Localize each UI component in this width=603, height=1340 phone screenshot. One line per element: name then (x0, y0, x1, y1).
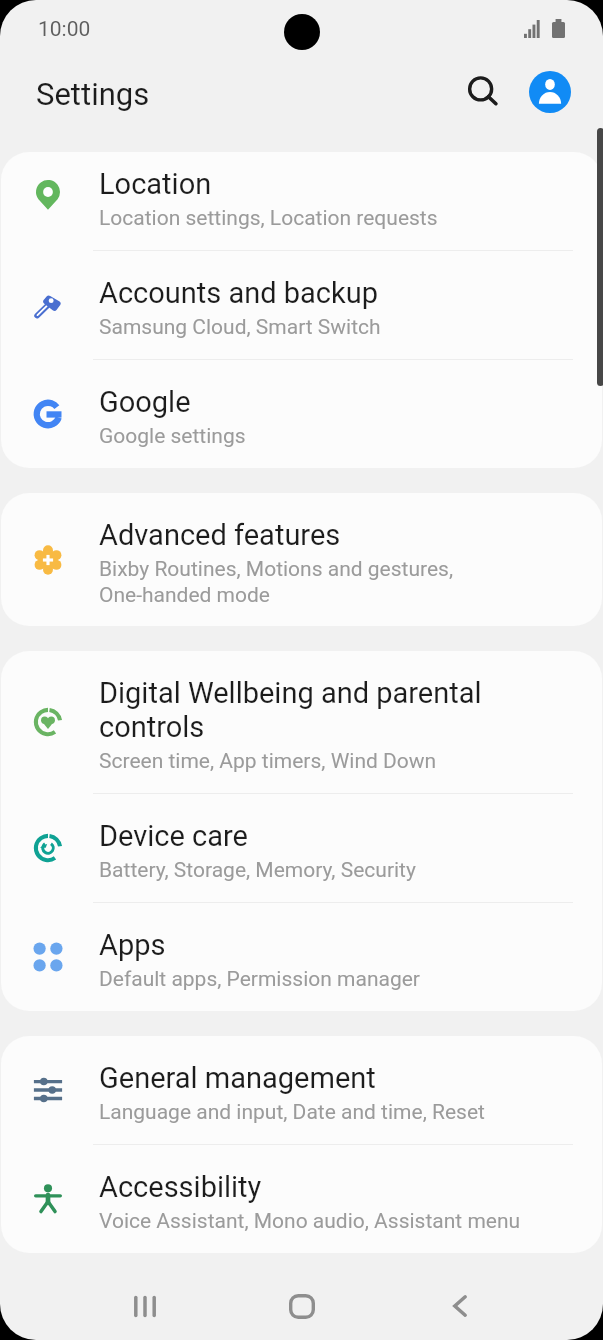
staticText: Voice Assistant, Mono audio, Assistant m… (99, 1209, 521, 1234)
staticText: Samsung Cloud, Smart Switch (99, 315, 381, 340)
button[interactable]: Account (529, 71, 571, 113)
staticText: Battery, Storage, Memory, Security (99, 858, 416, 883)
staticText: Language and input, Date and time, Reset (99, 1100, 485, 1125)
staticText: Apps (99, 928, 166, 962)
staticText: Google (99, 385, 191, 419)
button[interactable]: Digital Wellbeing and parental controls (1, 651, 602, 793)
staticText: 10:00 (38, 17, 91, 42)
staticText: Screen time, App timers, Wind Down (99, 749, 437, 774)
button[interactable]: Home (258, 1272, 346, 1340)
staticText: Bixby Routines, Motions and gestures, On… (99, 557, 454, 607)
button[interactable]: Back (416, 1272, 504, 1340)
button[interactable]: General management (1, 1036, 602, 1144)
staticText: Default apps, Permission manager (99, 967, 420, 992)
staticText: Location (99, 167, 212, 201)
button[interactable]: Accessibility (1, 1145, 602, 1253)
staticText: Digital Wellbeing and parental controls (99, 676, 482, 744)
button[interactable]: Accounts and backup (1, 251, 602, 359)
staticText: General management (99, 1061, 376, 1095)
staticText: Location settings, Location requests (99, 206, 438, 231)
button[interactable]: Google (1, 360, 602, 468)
button[interactable]: Apps (1, 903, 602, 1011)
button[interactable]: Search (462, 70, 506, 114)
button[interactable]: Advanced features (1, 493, 602, 626)
staticText: Accounts and backup (99, 276, 379, 310)
button[interactable]: Recents (101, 1272, 189, 1340)
button[interactable]: Device care (1, 794, 602, 902)
staticText: Accessibility (99, 1170, 262, 1204)
button[interactable]: Location (1, 152, 602, 250)
staticText: Device care (99, 819, 248, 853)
staticText: Google settings (99, 424, 246, 449)
staticText: Advanced features (99, 518, 341, 552)
staticText: Settings (36, 76, 150, 112)
